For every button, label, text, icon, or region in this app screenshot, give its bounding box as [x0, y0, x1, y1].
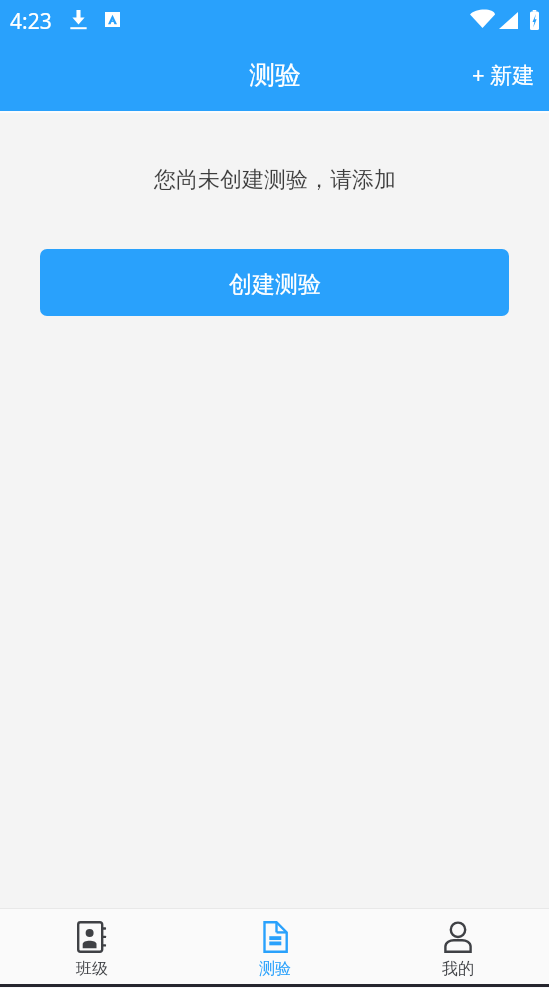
- staticText: 测验: [259, 959, 291, 979]
- button[interactable]: 创建测验: [40, 249, 509, 316]
- button[interactable]: 我的: [366, 909, 549, 984]
- staticText: 我的: [442, 959, 474, 979]
- staticText: 测验: [249, 59, 301, 92]
- staticText: 创建测验: [229, 270, 321, 299]
- staticText: + 新建: [472, 59, 535, 89]
- staticText: 您尚未创建测验，请添加: [154, 166, 396, 194]
- button[interactable]: 测验: [183, 909, 366, 984]
- staticText: 4:23: [10, 7, 52, 36]
- staticText: 班级: [76, 959, 108, 979]
- button[interactable]: + 新建: [466, 51, 541, 97]
- button[interactable]: 班级: [0, 909, 183, 984]
